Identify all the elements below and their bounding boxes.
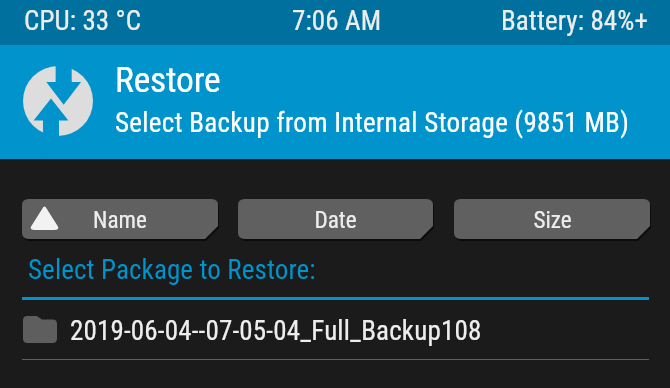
staticText: Select Backup from Internal Storage (985… [115,107,630,139]
staticText: Size [533,206,572,233]
staticText: Select Package to Restore: [28,254,316,286]
button[interactable]: Size [454,199,650,239]
staticText: Name [93,206,147,233]
button[interactable]: 2019-06-04--07-05-04_Full_Backup108 [0,300,670,359]
other: Sort ascending [29,205,60,230]
staticText: CPU: 33 °C [24,5,142,37]
button[interactable]: Date [238,199,433,239]
staticText: Date [314,206,357,233]
staticText: 2019-06-04--07-05-04_Full_Backup108 [70,315,482,347]
staticText: Battery: 84%+ [501,5,648,37]
staticText: Restore [115,59,221,101]
button[interactable]: Name [22,199,218,239]
staticText: 7:06 AM [292,5,382,37]
